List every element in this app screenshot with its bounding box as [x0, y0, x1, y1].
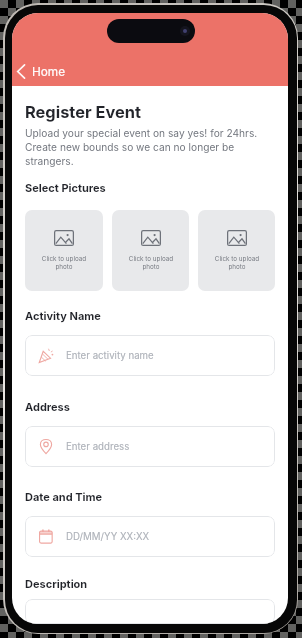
button[interactable]: Home — [14, 62, 69, 81]
staticText: Address — [25, 400, 70, 413]
staticText: DD/MM/YY XX:XX — [66, 531, 150, 543]
staticText: Register Event — [25, 102, 141, 122]
staticText: Click to upload photo — [128, 255, 174, 270]
staticText: Enter address — [66, 441, 130, 453]
staticText: Upload your special event on say yes! fo… — [25, 127, 275, 168]
button[interactable]: Click to upload photo — [198, 210, 275, 291]
staticText: Date and Time — [25, 490, 103, 503]
button[interactable]: DD/MM/YY XX:XX — [25, 516, 275, 557]
staticText: Enter activity name — [66, 350, 154, 362]
button[interactable]: Enter address — [25, 426, 275, 467]
staticText: Activity Name — [25, 309, 101, 322]
button[interactable]: Enter activity name — [25, 335, 275, 376]
button[interactable]: Click to upload photo — [112, 210, 189, 291]
staticText: Click to upload photo — [214, 255, 260, 270]
button[interactable] — [25, 599, 275, 624]
button[interactable]: Click to upload photo — [25, 210, 103, 291]
staticText: Select Pictures — [25, 181, 106, 194]
staticText: Home — [32, 65, 66, 79]
staticText: Click to upload photo — [41, 255, 87, 270]
staticText: Description — [25, 577, 88, 590]
